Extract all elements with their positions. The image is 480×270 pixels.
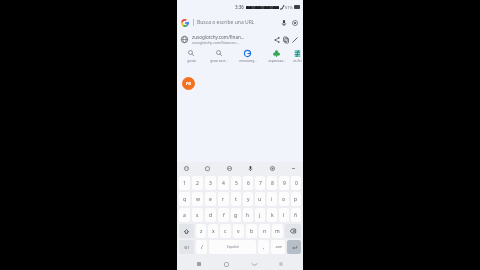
staticText: zusoglotchy.com/finances… <box>192 40 239 45</box>
button[interactable]: , <box>258 240 269 254</box>
button[interactable]: Share <box>272 35 281 44</box>
button[interactable]: Keyboard layout <box>276 259 286 269</box>
button[interactable]: 8 <box>267 176 277 190</box>
staticText: c <box>224 228 227 235</box>
button[interactable]: 5 <box>231 176 241 190</box>
button[interactable]: Copy <box>281 35 290 44</box>
button[interactable]: Home <box>221 259 231 269</box>
button[interactable]: e <box>205 192 216 206</box>
button[interactable]: zusoglotchy.com/finan… <box>181 31 299 47</box>
button[interactable]: emociong… <box>233 49 262 63</box>
button[interactable]: Google Lens <box>290 18 299 27</box>
button[interactable]: 1 <box>179 176 190 190</box>
button[interactable]: u <box>255 192 265 206</box>
button[interactable]: More options <box>289 164 298 173</box>
button[interactable]: ñ <box>291 208 301 222</box>
staticText: 7 <box>259 180 262 187</box>
staticText: q <box>183 196 187 203</box>
button[interactable]: g <box>231 208 241 222</box>
button[interactable]: Emoji <box>182 164 191 173</box>
button[interactable]: n <box>259 224 270 238</box>
button[interactable]: Recent apps <box>194 259 204 269</box>
button[interactable]: Translate <box>225 164 234 173</box>
button[interactable]: m <box>272 224 283 238</box>
button[interactable]: 9 <box>279 176 289 190</box>
staticText: l <box>283 212 285 219</box>
staticText: 4 <box>222 180 225 187</box>
staticText: o <box>282 196 286 203</box>
button[interactable]: f <box>218 208 229 222</box>
button[interactable]: p <box>291 192 301 206</box>
button[interactable]: Busca o escribe una URL <box>181 14 299 31</box>
button[interactable]: 2 <box>192 176 203 190</box>
staticText: g <box>234 212 238 219</box>
button[interactable]: Enter <box>287 240 301 254</box>
staticText: 51% <box>285 5 293 10</box>
button[interactable]: c <box>220 224 231 238</box>
button[interactable]: Back <box>249 259 259 269</box>
button[interactable]: Settings <box>268 164 277 173</box>
button[interactable]: z <box>196 224 206 238</box>
button[interactable]: .com <box>271 240 285 254</box>
button[interactable]: r <box>218 192 229 206</box>
staticText: t <box>235 196 237 203</box>
button[interactable]: s <box>192 208 203 222</box>
button[interactable]: x <box>208 224 218 238</box>
button[interactable]: v <box>233 224 244 238</box>
staticText: espaciosa… <box>268 59 286 63</box>
button[interactable]: a <box>179 208 190 222</box>
button[interactable]: q <box>179 192 190 206</box>
staticText: gusta <box>187 59 196 63</box>
button[interactable]: b <box>246 224 257 238</box>
button[interactable]: Account <box>182 77 195 90</box>
button[interactable]: 0 <box>291 176 301 190</box>
staticText: Español <box>227 245 239 249</box>
button[interactable]: Backspace <box>285 224 301 238</box>
staticText: emociong… <box>239 59 257 63</box>
button[interactable]: h <box>243 208 253 222</box>
button[interactable]: 6 <box>243 176 253 190</box>
button[interactable]: 4 <box>218 176 229 190</box>
button[interactable]: j <box>255 208 265 222</box>
staticText: m <box>275 228 280 235</box>
button[interactable]: Voice input <box>246 164 255 173</box>
button[interactable]: 3 <box>205 176 216 190</box>
button[interactable]: k <box>267 208 277 222</box>
button[interactable]: Voice search <box>279 18 288 27</box>
button[interactable]: espaciosa… <box>262 49 291 63</box>
button[interactable]: !#1 <box>179 240 194 254</box>
staticText: zusoglotchy.com/finan… <box>192 34 245 40</box>
staticText: Busca o escribe una URL <box>197 19 279 26</box>
button[interactable]: t <box>231 192 241 206</box>
button[interactable]: grow sure… <box>205 49 233 63</box>
staticText: k <box>271 212 274 219</box>
button[interactable]: l <box>279 208 289 222</box>
staticText: n <box>263 228 267 235</box>
button[interactable]: / <box>196 240 207 254</box>
staticText: x <box>212 228 215 235</box>
staticText: 8 <box>271 180 274 187</box>
staticText: e <box>209 196 212 203</box>
button[interactable]: Shift <box>179 224 194 238</box>
button[interactable]: i <box>267 192 277 206</box>
button[interactable]: gusta <box>177 49 205 63</box>
staticText: r <box>222 196 225 203</box>
staticText: .com <box>275 245 282 249</box>
staticText: h <box>246 212 250 219</box>
staticText: v <box>237 228 240 235</box>
button[interactable]: Español <box>209 240 256 254</box>
button[interactable]: es fici <box>291 49 303 63</box>
staticText: d <box>209 212 213 219</box>
button[interactable]: Edit <box>290 35 299 44</box>
staticText: 1 <box>183 180 186 187</box>
staticText: w <box>196 196 200 203</box>
button[interactable]: Clipboard <box>203 164 212 173</box>
button[interactable]: 7 <box>255 176 265 190</box>
button[interactable]: y <box>243 192 253 206</box>
button[interactable]: d <box>205 208 216 222</box>
button[interactable]: o <box>279 192 289 206</box>
staticText: p <box>294 196 298 203</box>
staticText: 9 <box>283 180 286 187</box>
staticText: b <box>250 228 254 235</box>
button[interactable]: w <box>192 192 203 206</box>
